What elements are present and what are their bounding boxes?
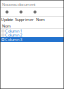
staticText: Nouveau document [2, 2, 35, 7]
staticText: Update [1, 17, 13, 22]
staticText: Nom [2, 23, 11, 29]
staticText: Column 1 [5, 28, 22, 34]
staticText: Column 3 [5, 37, 22, 42]
staticText: Supprimer [15, 17, 34, 22]
staticText: Nom [36, 17, 45, 22]
staticText: Column 2 [5, 32, 22, 38]
